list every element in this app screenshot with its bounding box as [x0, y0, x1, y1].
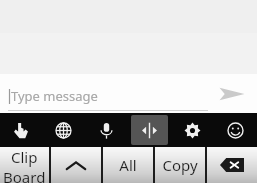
button[interactable]	[51, 147, 101, 183]
staticText: Type message	[11, 87, 98, 105]
button[interactable]: Split keyboard	[131, 115, 168, 145]
button[interactable]: Settings	[171, 113, 214, 147]
button[interactable]: Handwriting	[0, 113, 42, 147]
button[interactable]: Type message	[8, 81, 208, 111]
button[interactable]: Voice input	[85, 113, 128, 147]
button[interactable]: All	[103, 147, 153, 183]
button[interactable]: Clip	[0, 147, 49, 183]
button[interactable]: Language	[42, 113, 85, 147]
staticText: Copy	[162, 155, 198, 175]
staticText: Board	[3, 167, 46, 183]
button[interactable]: Copy	[155, 147, 205, 183]
button[interactable]: Send	[213, 75, 251, 113]
staticText: All	[119, 155, 137, 175]
staticText: Clip	[11, 147, 38, 167]
button[interactable]	[207, 147, 257, 183]
button[interactable]: Emoji	[214, 113, 257, 147]
